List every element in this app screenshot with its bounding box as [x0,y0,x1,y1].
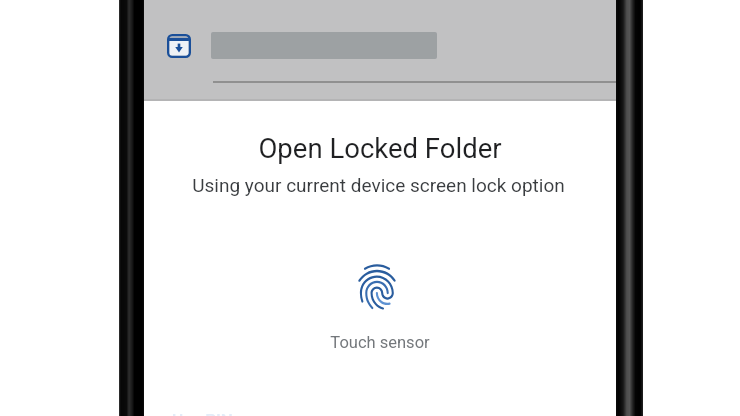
button[interactable]: Fingerprint sensor [358,264,396,310]
staticText: Use PIN [172,410,233,416]
staticText: Open Locked Folder [258,132,502,164]
staticText: Touch sensor [330,333,430,352]
staticText: Using your current device screen lock op… [192,174,565,196]
button[interactable]: Move to archive [167,34,191,58]
button[interactable]: Use PIN [172,410,262,416]
